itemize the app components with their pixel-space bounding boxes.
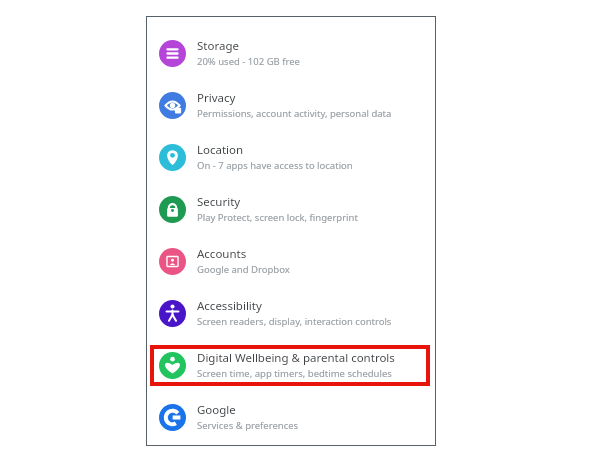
staticText: Services & preferences <box>197 419 299 432</box>
staticText: Privacy <box>197 90 236 106</box>
staticText: Permissions, account activity, personal … <box>197 107 392 120</box>
staticText: Play Protect, screen lock, fingerprint <box>197 211 358 224</box>
staticText: Storage <box>197 38 239 54</box>
staticText: Screen readers, display, interaction con… <box>197 315 392 328</box>
staticText: Screen time, app timers, bedtime schedul… <box>197 367 392 380</box>
button[interactable] <box>150 345 430 386</box>
button[interactable]: Storage <box>146 27 436 79</box>
staticText: Digital Wellbeing & parental controls <box>197 350 395 366</box>
button[interactable]: Digital Wellbeing & parental controls <box>146 339 436 391</box>
staticText: Accounts <box>197 246 247 262</box>
staticText: Security <box>197 194 241 210</box>
staticText: Google and Dropbox <box>197 263 290 276</box>
button[interactable]: Google <box>146 391 436 443</box>
button[interactable]: Accounts <box>146 235 436 287</box>
staticText: 20% used - 102 GB free <box>197 55 300 68</box>
button[interactable]: Accessibility <box>146 287 436 339</box>
staticText: Accessibility <box>197 298 262 314</box>
button[interactable]: Security <box>146 183 436 235</box>
staticText: Google <box>197 402 236 418</box>
staticText: Location <box>197 142 244 158</box>
button[interactable]: Privacy <box>146 79 436 131</box>
button[interactable]: Location <box>146 131 436 183</box>
staticText: On - 7 apps have access to location <box>197 159 353 172</box>
